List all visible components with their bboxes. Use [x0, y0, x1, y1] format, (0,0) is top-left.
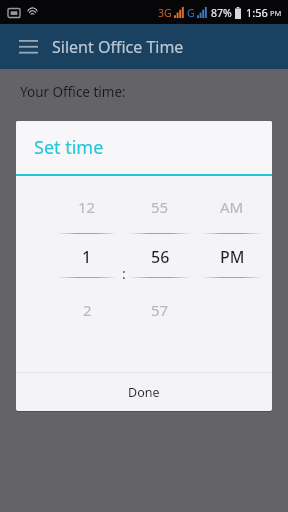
staticText: 3G [158, 6, 172, 20]
button[interactable]: PM [203, 238, 261, 276]
staticText: 2 [83, 300, 92, 320]
staticText: 55 [151, 197, 169, 217]
button[interactable]: Open navigation menu [10, 29, 46, 65]
staticText: 1 [82, 246, 92, 268]
staticText: 56 [151, 246, 170, 268]
staticText: PM [270, 8, 282, 18]
staticText: 87% [211, 6, 232, 20]
staticText: Done [128, 384, 160, 401]
staticText: Silent Office Time [52, 36, 184, 58]
staticText: : [122, 264, 126, 283]
staticText: 57 [151, 300, 169, 320]
button[interactable]: 1 [58, 238, 116, 276]
staticText: G [187, 6, 195, 20]
staticText: AM [220, 197, 244, 217]
staticText: 1:56 [246, 5, 268, 20]
staticText: Set time [34, 135, 104, 160]
button[interactable]: 56 [130, 238, 190, 276]
staticText: PM [220, 246, 245, 268]
staticText: Your Office time: [20, 83, 126, 101]
staticText: 12 [78, 197, 96, 217]
button[interactable]: Done [16, 373, 272, 411]
